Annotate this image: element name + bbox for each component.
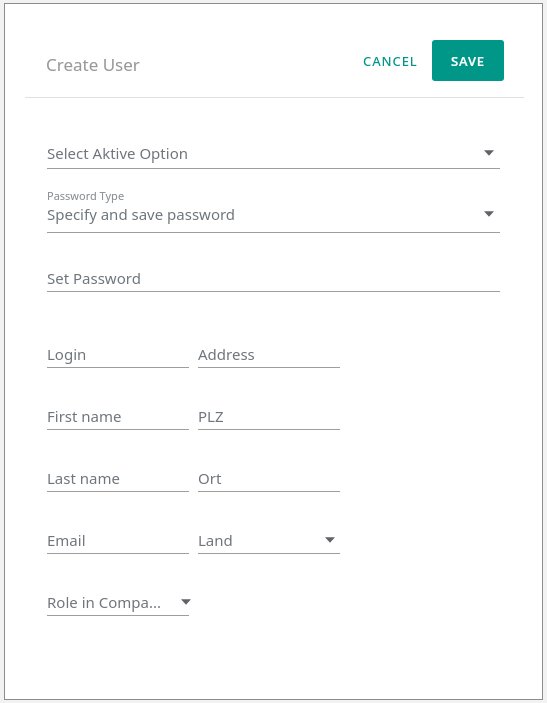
staticText: Specify and save password bbox=[47, 204, 236, 224]
staticText: Ort bbox=[198, 468, 222, 488]
button[interactable]: Last name bbox=[47, 468, 189, 498]
staticText: SAVE bbox=[451, 52, 485, 70]
staticText: Role in Compa... bbox=[47, 592, 161, 612]
staticText: Address bbox=[198, 344, 255, 364]
staticText: Login bbox=[47, 344, 87, 364]
staticText: First name bbox=[47, 406, 122, 426]
staticText: Select Aktive Option bbox=[47, 143, 188, 163]
button[interactable]: Role in Compa... bbox=[47, 592, 189, 622]
staticText: Password Type bbox=[47, 188, 125, 203]
button[interactable]: Select Aktive Option bbox=[47, 143, 500, 173]
staticText: PLZ bbox=[198, 406, 224, 426]
button[interactable]: Login bbox=[47, 344, 189, 374]
button[interactable]: PLZ bbox=[198, 406, 340, 436]
button[interactable]: First name bbox=[47, 406, 189, 436]
button[interactable]: Password Type bbox=[47, 188, 500, 234]
button[interactable]: SAVE bbox=[432, 40, 504, 81]
staticText: CANCEL bbox=[363, 52, 418, 70]
staticText: Email bbox=[47, 530, 86, 550]
staticText: Land bbox=[198, 530, 233, 550]
staticText: Set Password bbox=[47, 268, 141, 288]
button[interactable]: Email bbox=[47, 530, 189, 560]
button[interactable]: Ort bbox=[198, 468, 340, 498]
staticText: Last name bbox=[47, 468, 120, 488]
button[interactable]: Land bbox=[198, 530, 340, 560]
button[interactable]: CANCEL bbox=[353, 43, 427, 79]
button[interactable]: Set Password bbox=[47, 268, 500, 298]
staticText: Create User bbox=[46, 53, 140, 76]
button[interactable]: Address bbox=[198, 344, 340, 374]
